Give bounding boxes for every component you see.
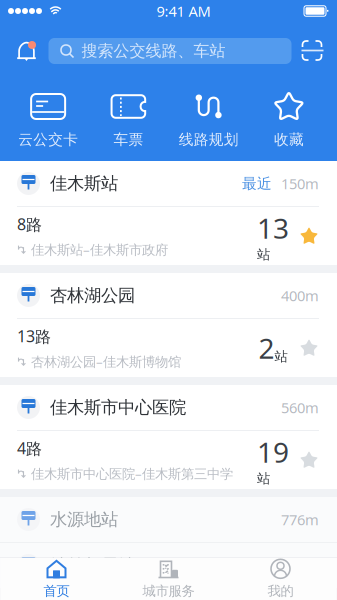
- button[interactable]: 4路: [0, 431, 337, 489]
- staticText: 收藏: [274, 130, 304, 148]
- staticText: 400m: [281, 286, 319, 305]
- button[interactable]: 8路: [0, 207, 337, 265]
- staticText: 1229m: [273, 556, 319, 575]
- button[interactable]: 车票: [88, 95, 168, 147]
- staticText: 佳木斯市中心医院: [50, 397, 186, 418]
- staticText: 4路: [17, 437, 42, 459]
- staticText: 水源地站: [50, 509, 118, 530]
- button[interactable]: 站前邮局站: [0, 543, 337, 588]
- button[interactable]: 13路: [0, 319, 337, 377]
- staticText: 杏林湖公园–佳木斯博物馆: [31, 353, 181, 370]
- staticText: 佳木斯站–佳木斯市政府: [31, 241, 168, 258]
- staticText: 城市服务: [142, 583, 194, 599]
- button[interactable]: 线路规划: [168, 95, 249, 147]
- button[interactable]: 佳木斯市中心医院: [0, 385, 337, 430]
- staticText: 站前邮局站: [50, 555, 135, 576]
- staticText: 2站: [258, 329, 287, 367]
- staticText: 搜索公交线路、车站: [81, 41, 225, 61]
- button[interactable]: 城市服务: [112, 557, 224, 600]
- staticText: 车票: [113, 130, 143, 148]
- staticText: 13路: [17, 325, 51, 347]
- staticText: 佳木斯市中心医院–佳木斯第三中学: [31, 465, 233, 482]
- staticText: 线路规划: [179, 130, 239, 148]
- button[interactable]: 我的: [224, 557, 336, 600]
- staticText: 佳木斯站: [50, 173, 118, 194]
- staticText: 我的: [267, 583, 293, 599]
- staticText: 19站: [257, 433, 289, 487]
- staticText: 150m: [281, 174, 319, 193]
- button[interactable]: 扫一扫: [301, 40, 323, 62]
- staticText: 8路: [17, 213, 42, 235]
- button[interactable]: 杏林湖公园: [0, 273, 337, 318]
- button[interactable]: 收藏: [249, 95, 329, 147]
- staticText: 最近: [242, 174, 272, 192]
- staticText: 13站: [257, 209, 289, 263]
- button[interactable]: 水源地站: [0, 497, 337, 542]
- staticText: 776m: [281, 510, 319, 529]
- staticText: 杏林湖公园: [50, 285, 135, 306]
- button[interactable]: 云公交卡: [8, 95, 88, 147]
- staticText: 首页: [43, 583, 69, 599]
- staticText: 云公交卡: [18, 130, 78, 148]
- staticText: 560m: [281, 398, 319, 417]
- button[interactable]: 佳木斯站: [0, 161, 337, 206]
- button[interactable]: 通知: [14, 40, 38, 62]
- button[interactable]: 首页: [0, 557, 112, 600]
- staticText: 9:41 AM: [156, 1, 210, 21]
